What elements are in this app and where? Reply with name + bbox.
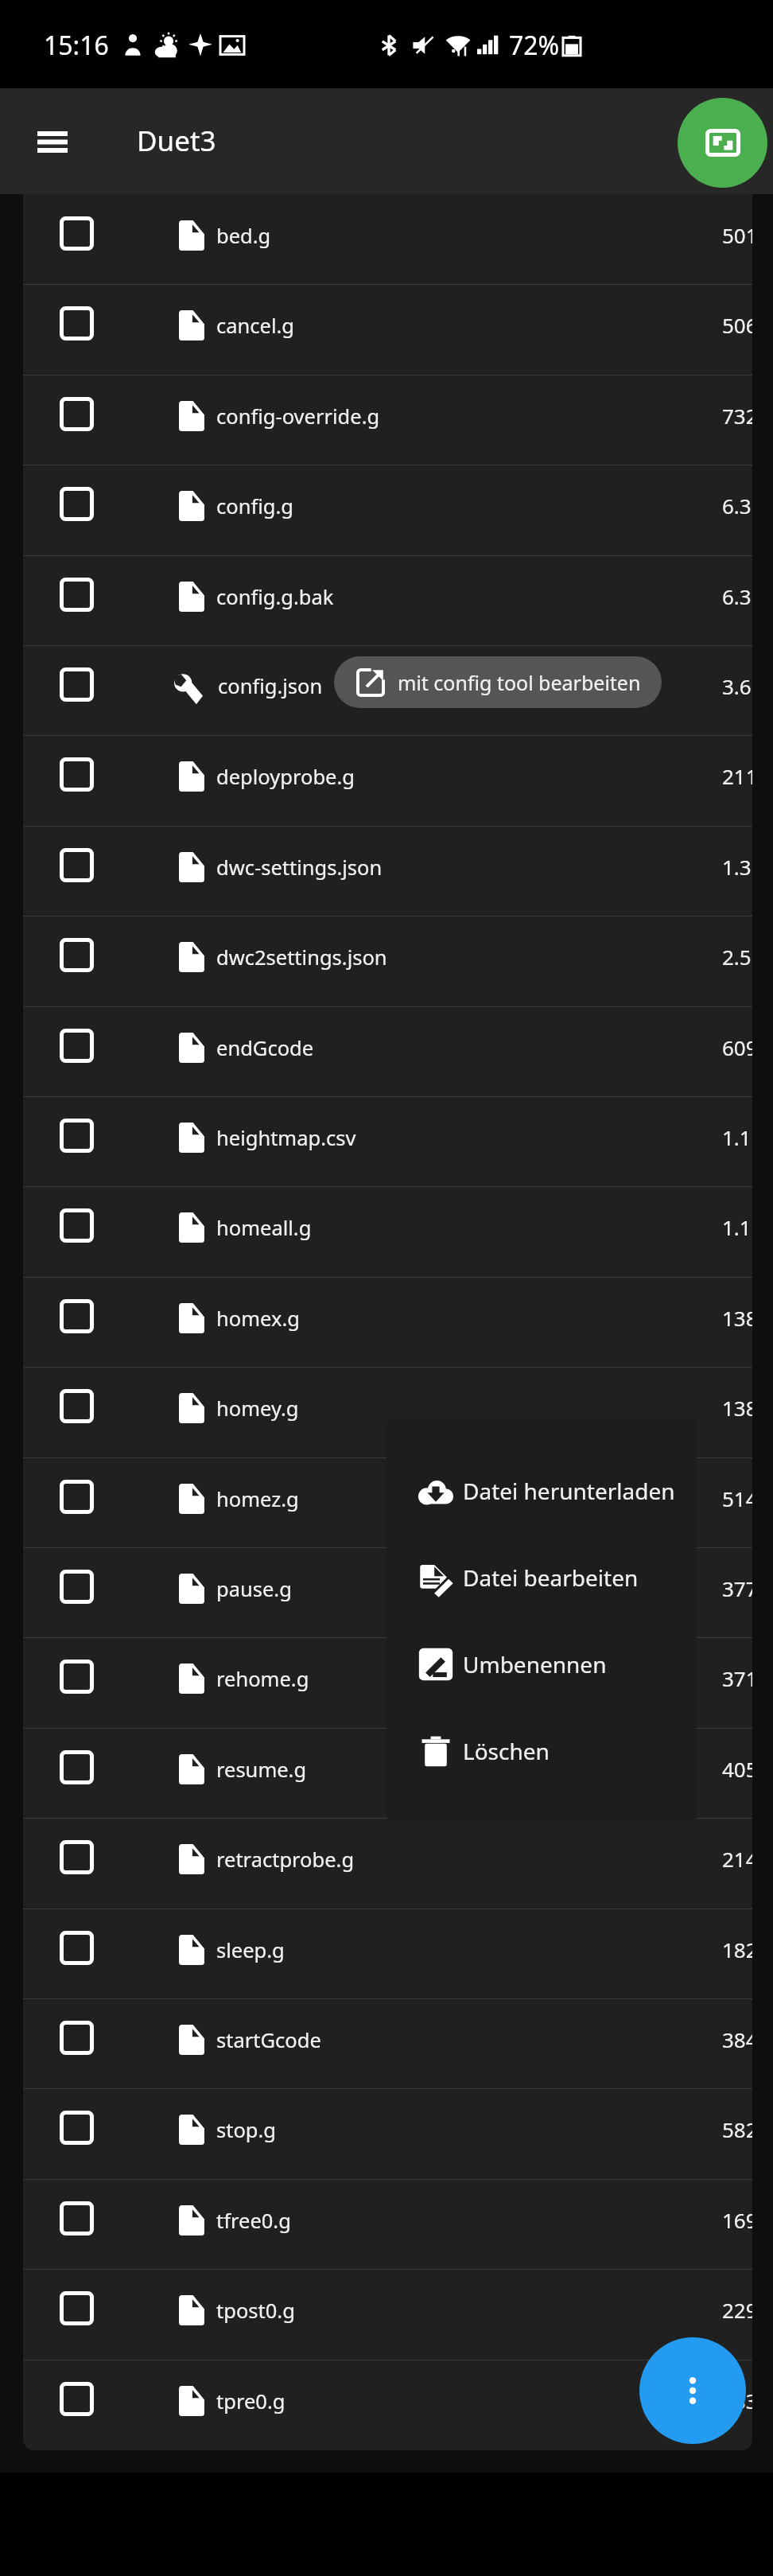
button[interactable]: Datei bearbeiten xyxy=(386,1534,697,1621)
button[interactable]: Datei herunterladen xyxy=(386,1447,697,1534)
button[interactable]: mit config tool bearbeiten xyxy=(334,656,662,708)
button[interactable]: Select sleep.g xyxy=(41,1912,112,1983)
staticText: 384 kB xyxy=(722,2025,752,2053)
button[interactable]: Select stop.g xyxy=(23,2088,752,2178)
button[interactable]: Select retractprobe.g xyxy=(41,1821,112,1893)
staticText: retractprobe.g xyxy=(216,1846,355,1874)
staticText: Datei bearbeiten xyxy=(463,1562,639,1593)
staticText: 15:16 xyxy=(44,28,109,63)
staticText: 182 kB xyxy=(722,1936,752,1963)
staticText: mit config tool bearbeiten xyxy=(398,669,641,696)
staticText: 6.3 kB xyxy=(722,582,752,610)
button[interactable]: Select deployprobe.g xyxy=(23,735,752,825)
button[interactable]: Select resume.g xyxy=(41,1731,112,1803)
staticText: homez.g xyxy=(216,1485,299,1513)
button[interactable]: Select tpost0.g xyxy=(23,2269,752,2359)
staticText: 169 kB xyxy=(722,2206,752,2234)
staticText: Umbenennen xyxy=(463,1649,607,1679)
staticText: 582 kB xyxy=(722,2115,752,2143)
button[interactable]: Fit to screen xyxy=(678,98,767,188)
button[interactable]: Select cancel.g xyxy=(23,284,752,374)
staticText: stop.g xyxy=(216,2116,277,2144)
button[interactable]: Select heightmap.csv xyxy=(41,1099,112,1171)
staticText: 214 kB xyxy=(722,1845,752,1873)
staticText: deployprobe.g xyxy=(216,763,355,791)
button[interactable]: Select tpre0.g xyxy=(23,2360,752,2450)
staticText: 1.1 kB xyxy=(722,1123,752,1151)
button[interactable]: Select stop.g xyxy=(41,2092,112,2163)
staticText: startGcode xyxy=(216,2026,321,2054)
button[interactable]: Select tpre0.g xyxy=(41,2363,112,2434)
button[interactable]: Select startGcode xyxy=(23,1998,752,2088)
button[interactable]: Select homey.g xyxy=(41,1370,112,1442)
staticText: homeall.g xyxy=(216,1214,312,1242)
button[interactable]: Select dwc2settings.json xyxy=(41,919,112,990)
staticText: 371 kB xyxy=(722,1664,752,1692)
button[interactable]: Select endGcode xyxy=(41,1010,112,1081)
button[interactable]: Select bed.g xyxy=(23,194,752,284)
staticText: 501 kB xyxy=(722,221,752,249)
staticText: config.g.bak xyxy=(216,583,334,611)
staticText: 377 kB xyxy=(722,1574,752,1602)
staticText: 1.1 kB xyxy=(722,1213,752,1241)
button[interactable]: Select sleep.g xyxy=(23,1909,752,1998)
button[interactable]: Select heightmap.csv xyxy=(23,1096,752,1186)
button[interactable]: Select pause.g xyxy=(41,1551,112,1622)
button[interactable]: Select homey.g xyxy=(23,1367,752,1457)
button[interactable]: Select retractprobe.g xyxy=(23,1818,752,1908)
button[interactable]: Select config.g xyxy=(41,468,112,539)
button[interactable]: More options xyxy=(639,2337,746,2444)
staticText: pause.g xyxy=(216,1575,292,1603)
button[interactable]: Select rehome.g xyxy=(23,1637,752,1727)
staticText: 229 kB xyxy=(722,2296,752,2324)
button[interactable]: Select config.json xyxy=(41,648,112,720)
staticText: config.g xyxy=(216,492,293,520)
button[interactable]: Select dwc-settings.json xyxy=(23,826,752,916)
staticText: Löschen xyxy=(463,1736,550,1766)
staticText: 506 kB xyxy=(722,311,752,339)
staticText: config-override.g xyxy=(216,403,380,430)
staticText: 3.6 kB xyxy=(722,672,752,700)
button[interactable]: Select homez.g xyxy=(23,1457,752,1547)
button[interactable]: Select tpost0.g xyxy=(41,2272,112,2344)
staticText: tpre0.g xyxy=(216,2387,286,2415)
staticText: dwc-settings.json xyxy=(216,854,383,881)
button[interactable]: Select config-override.g xyxy=(23,375,752,465)
staticText: 2.5 kB xyxy=(722,943,752,971)
button[interactable]: Select config.json xyxy=(23,645,752,735)
button[interactable]: Select homex.g xyxy=(41,1280,112,1352)
button[interactable]: Select homeall.g xyxy=(23,1186,752,1276)
staticText: sleep.g xyxy=(216,1936,285,1964)
button[interactable]: Select homez.g xyxy=(41,1461,112,1532)
staticText: tfree0.g xyxy=(216,2207,291,2235)
staticText: dwc2settings.json xyxy=(216,944,387,971)
button[interactable]: Select dwc-settings.json xyxy=(41,829,112,901)
button[interactable]: Select dwc2settings.json xyxy=(23,916,752,1006)
button[interactable]: Select cancel.g xyxy=(41,287,112,359)
staticText: 405 kB xyxy=(722,1755,752,1783)
staticText: endGcode xyxy=(216,1034,314,1062)
button[interactable]: Select homeall.g xyxy=(41,1189,112,1261)
button[interactable]: Select pause.g xyxy=(23,1547,752,1637)
button[interactable]: Select config.g.bak xyxy=(41,558,112,630)
button[interactable]: Select bed.g xyxy=(41,197,112,269)
button[interactable]: Navigation menu xyxy=(24,113,81,170)
button[interactable]: Select startGcode xyxy=(41,2002,112,2073)
button[interactable]: Select homex.g xyxy=(23,1277,752,1367)
button[interactable]: Select endGcode xyxy=(23,1006,752,1096)
button[interactable]: Löschen xyxy=(386,1707,697,1794)
button[interactable]: Select config.g.bak xyxy=(23,555,752,645)
staticText: 211 kB xyxy=(722,762,752,790)
button[interactable]: Select rehome.g xyxy=(41,1640,112,1712)
staticText: 732 kB xyxy=(722,402,752,430)
button[interactable]: Select resume.g xyxy=(23,1728,752,1818)
staticText: 138 kB xyxy=(722,1304,752,1332)
staticText: cancel.g xyxy=(216,312,295,340)
staticText: tpost0.g xyxy=(216,2297,295,2325)
button[interactable]: Select tfree0.g xyxy=(41,2182,112,2254)
button[interactable]: Select tfree0.g xyxy=(23,2179,752,2269)
button[interactable]: Umbenennen xyxy=(386,1621,697,1707)
button[interactable]: Select deployprobe.g xyxy=(41,738,112,810)
button[interactable]: Select config.g xyxy=(23,465,752,555)
button[interactable]: Select config-override.g xyxy=(41,378,112,449)
